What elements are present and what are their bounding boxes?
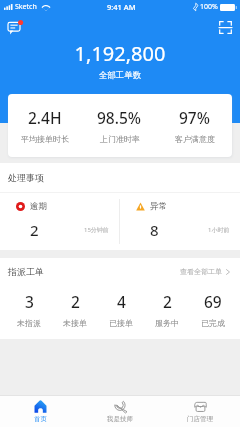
staticText: 指派工单 [8,266,44,277]
staticText: Sketch [15,2,37,12]
staticText: 8 [150,220,159,240]
staticText: 15分钟前 [84,226,109,234]
staticText: 全部工单数 [0,70,240,81]
staticText: 未接单 [63,318,87,328]
staticText: 服务中 [155,318,179,328]
staticText: 门店管理 [187,415,213,423]
button[interactable]: 2.4H [8,94,82,157]
staticText: 未指派 [17,318,41,328]
button[interactable]: 2 [144,285,190,339]
staticText: 首页 [34,415,47,423]
button[interactable]: 逾期 [0,193,119,250]
button[interactable]: 首页 [0,396,80,427]
staticText: 1,192,800 [0,40,240,67]
button[interactable]: Scan [214,16,236,38]
button[interactable]: Messages [4,16,26,38]
button[interactable]: 查看全部工单 [180,267,230,276]
staticText: 1小时前 [208,226,230,234]
staticText: 已完成 [201,318,225,328]
staticText: 98.5% [97,107,142,128]
button[interactable]: 我是技师 [80,396,160,427]
staticText: 2 [30,220,39,240]
staticText: 4 [117,291,126,312]
staticText: 异常 [150,201,167,212]
staticText: 2 [71,291,80,312]
staticText: 已接单 [109,318,133,328]
button[interactable]: 98.5% [82,94,157,157]
staticText: 我是技师 [107,415,133,423]
staticText: 平均接单时长 [21,134,69,144]
staticText: 逾期 [30,201,47,212]
staticText: 2.4H [28,107,62,128]
button[interactable]: 97% [157,94,232,157]
staticText: 客户满意度 [175,134,215,144]
staticText: 69 [204,291,222,312]
button[interactable]: 异常 [120,193,240,250]
button[interactable]: 3 [6,285,52,339]
staticText: 查看全部工单 [180,267,222,276]
staticText: 97% [179,107,210,128]
button[interactable]: 2 [52,285,98,339]
staticText: 2 [163,291,172,312]
button[interactable]: 69 [190,285,236,339]
staticText: 9:41 AM [107,2,136,12]
staticText: 100% [200,2,218,12]
staticText: 上门准时率 [100,134,140,144]
button[interactable]: 门店管理 [160,396,240,427]
staticText: 3 [25,291,34,312]
staticText: 处理事项 [8,172,44,183]
button[interactable]: 4 [98,285,144,339]
